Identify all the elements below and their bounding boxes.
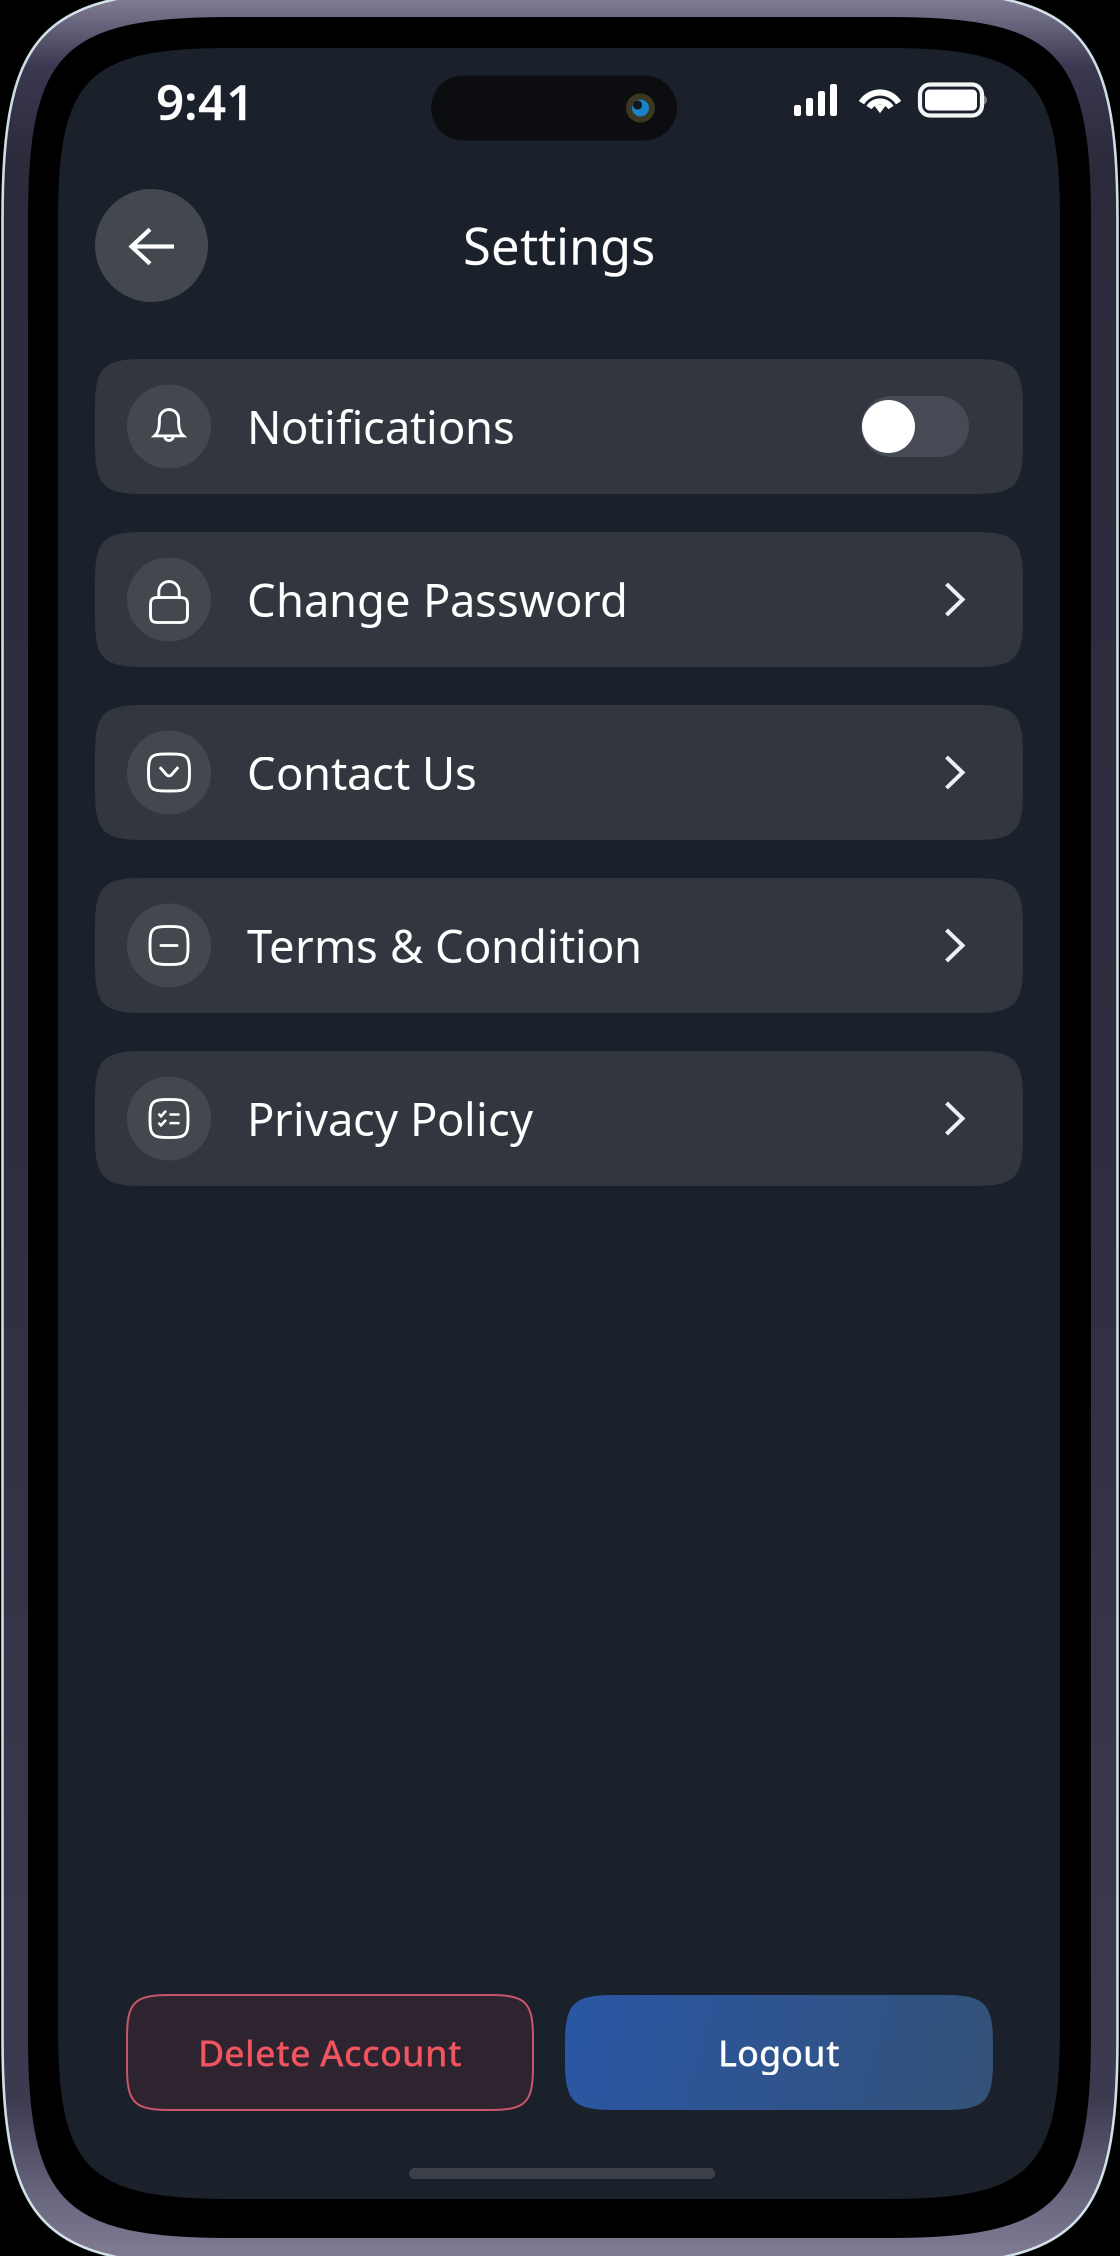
staticText: Notifications xyxy=(247,396,515,457)
button[interactable]: Back xyxy=(95,189,208,302)
staticText: 9:41 xyxy=(156,68,254,134)
button[interactable]: Privacy Policy xyxy=(95,1051,1023,1186)
staticText: Settings xyxy=(463,211,655,279)
button[interactable]: Contact Us xyxy=(95,705,1023,840)
staticText: Delete Account xyxy=(198,2029,462,2076)
staticText: Privacy Policy xyxy=(247,1088,533,1149)
staticText: Change Password xyxy=(247,569,628,630)
button[interactable]: Terms & Condition xyxy=(95,878,1023,1013)
button[interactable]: Logout xyxy=(565,1995,993,2110)
staticText: Logout xyxy=(718,2029,840,2076)
staticText: Terms & Condition xyxy=(247,915,642,976)
button[interactable]: Change Password xyxy=(95,532,1023,667)
button[interactable]: Notifications xyxy=(95,359,1023,494)
staticText: Contact Us xyxy=(247,742,477,803)
button[interactable]: Delete Account xyxy=(127,1995,533,2110)
